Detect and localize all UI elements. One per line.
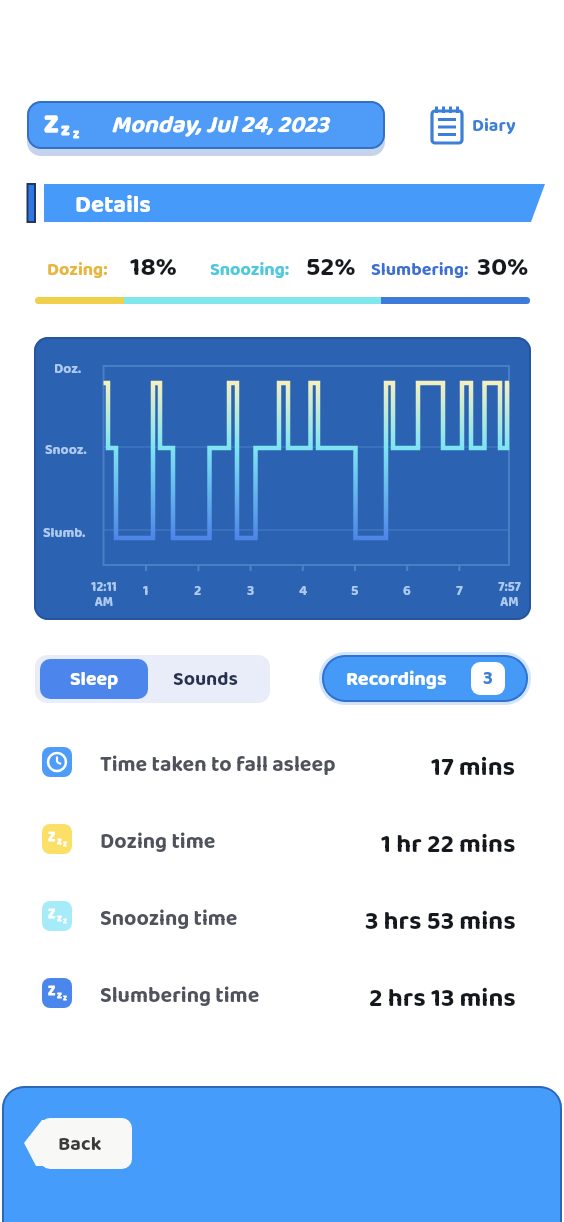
- staticText: z: [73, 124, 80, 145]
- staticText: 7: [456, 580, 463, 602]
- staticText: Snooz.: [45, 439, 87, 461]
- staticText: Diary: [472, 112, 516, 141]
- staticText: z: [57, 833, 62, 849]
- button[interactable]: Sounds: [149, 659, 261, 699]
- staticText: 2: [194, 580, 202, 602]
- staticText: 6: [403, 580, 411, 602]
- staticText: Slumbering:: [371, 256, 469, 285]
- staticText: Sleep: [70, 664, 119, 695]
- button[interactable]: Z: [34, 978, 516, 1008]
- staticText: Snoozing time: [100, 902, 238, 932]
- staticText: Time taken to fall asleep: [100, 748, 336, 778]
- button[interactable]: Z: [34, 824, 516, 854]
- staticText: Dozing time: [100, 825, 216, 855]
- staticText: Z: [44, 104, 59, 146]
- staticText: Back: [58, 1128, 102, 1160]
- staticText: Snoozing:: [210, 256, 290, 285]
- staticText: Doz.: [54, 358, 82, 380]
- staticText: 3 hrs 53 mins: [365, 901, 516, 931]
- staticText: Slumbering time: [100, 979, 260, 1009]
- staticText: z: [61, 116, 70, 145]
- staticText: Dozing:: [47, 256, 108, 285]
- staticText: 17 mins: [431, 747, 516, 777]
- staticText: 7:57 AM: [498, 577, 521, 613]
- staticText: Z: [48, 827, 56, 848]
- staticText: Recordings: [346, 663, 447, 695]
- staticText: 1: [143, 580, 149, 602]
- staticText: 3: [483, 664, 493, 694]
- staticText: z: [57, 987, 62, 1003]
- staticText: 18%: [130, 246, 177, 289]
- button[interactable]: Time taken to fall asleep: [34, 747, 516, 777]
- staticText: 3: [247, 580, 255, 602]
- staticText: z: [63, 837, 67, 850]
- staticText: 4: [299, 580, 308, 602]
- staticText: 2 hrs 13 mins: [369, 978, 516, 1008]
- staticText: Monday, Jul 24, 2023: [111, 106, 329, 144]
- button[interactable]: Back: [20, 1114, 136, 1174]
- staticText: Sounds: [173, 664, 238, 695]
- staticText: z: [63, 991, 67, 1004]
- staticText: 5: [351, 580, 359, 602]
- button[interactable]: Sleep: [40, 659, 148, 699]
- staticText: 30%: [477, 246, 529, 289]
- staticText: Z: [48, 904, 56, 925]
- staticText: 1 hr 22 mins: [381, 824, 516, 854]
- button[interactable]: Diary: [424, 100, 544, 150]
- staticText: 52%: [306, 246, 356, 289]
- staticText: z: [57, 910, 62, 926]
- button[interactable]: Z: [34, 901, 516, 931]
- button[interactable]: Z: [27, 101, 385, 149]
- button[interactable]: Recordings: [322, 655, 528, 702]
- staticText: Details: [75, 186, 151, 224]
- staticText: Z: [48, 981, 56, 1002]
- staticText: z: [63, 914, 67, 927]
- staticText: 12:11 AM: [91, 577, 117, 613]
- staticText: Slumb.: [43, 522, 86, 544]
